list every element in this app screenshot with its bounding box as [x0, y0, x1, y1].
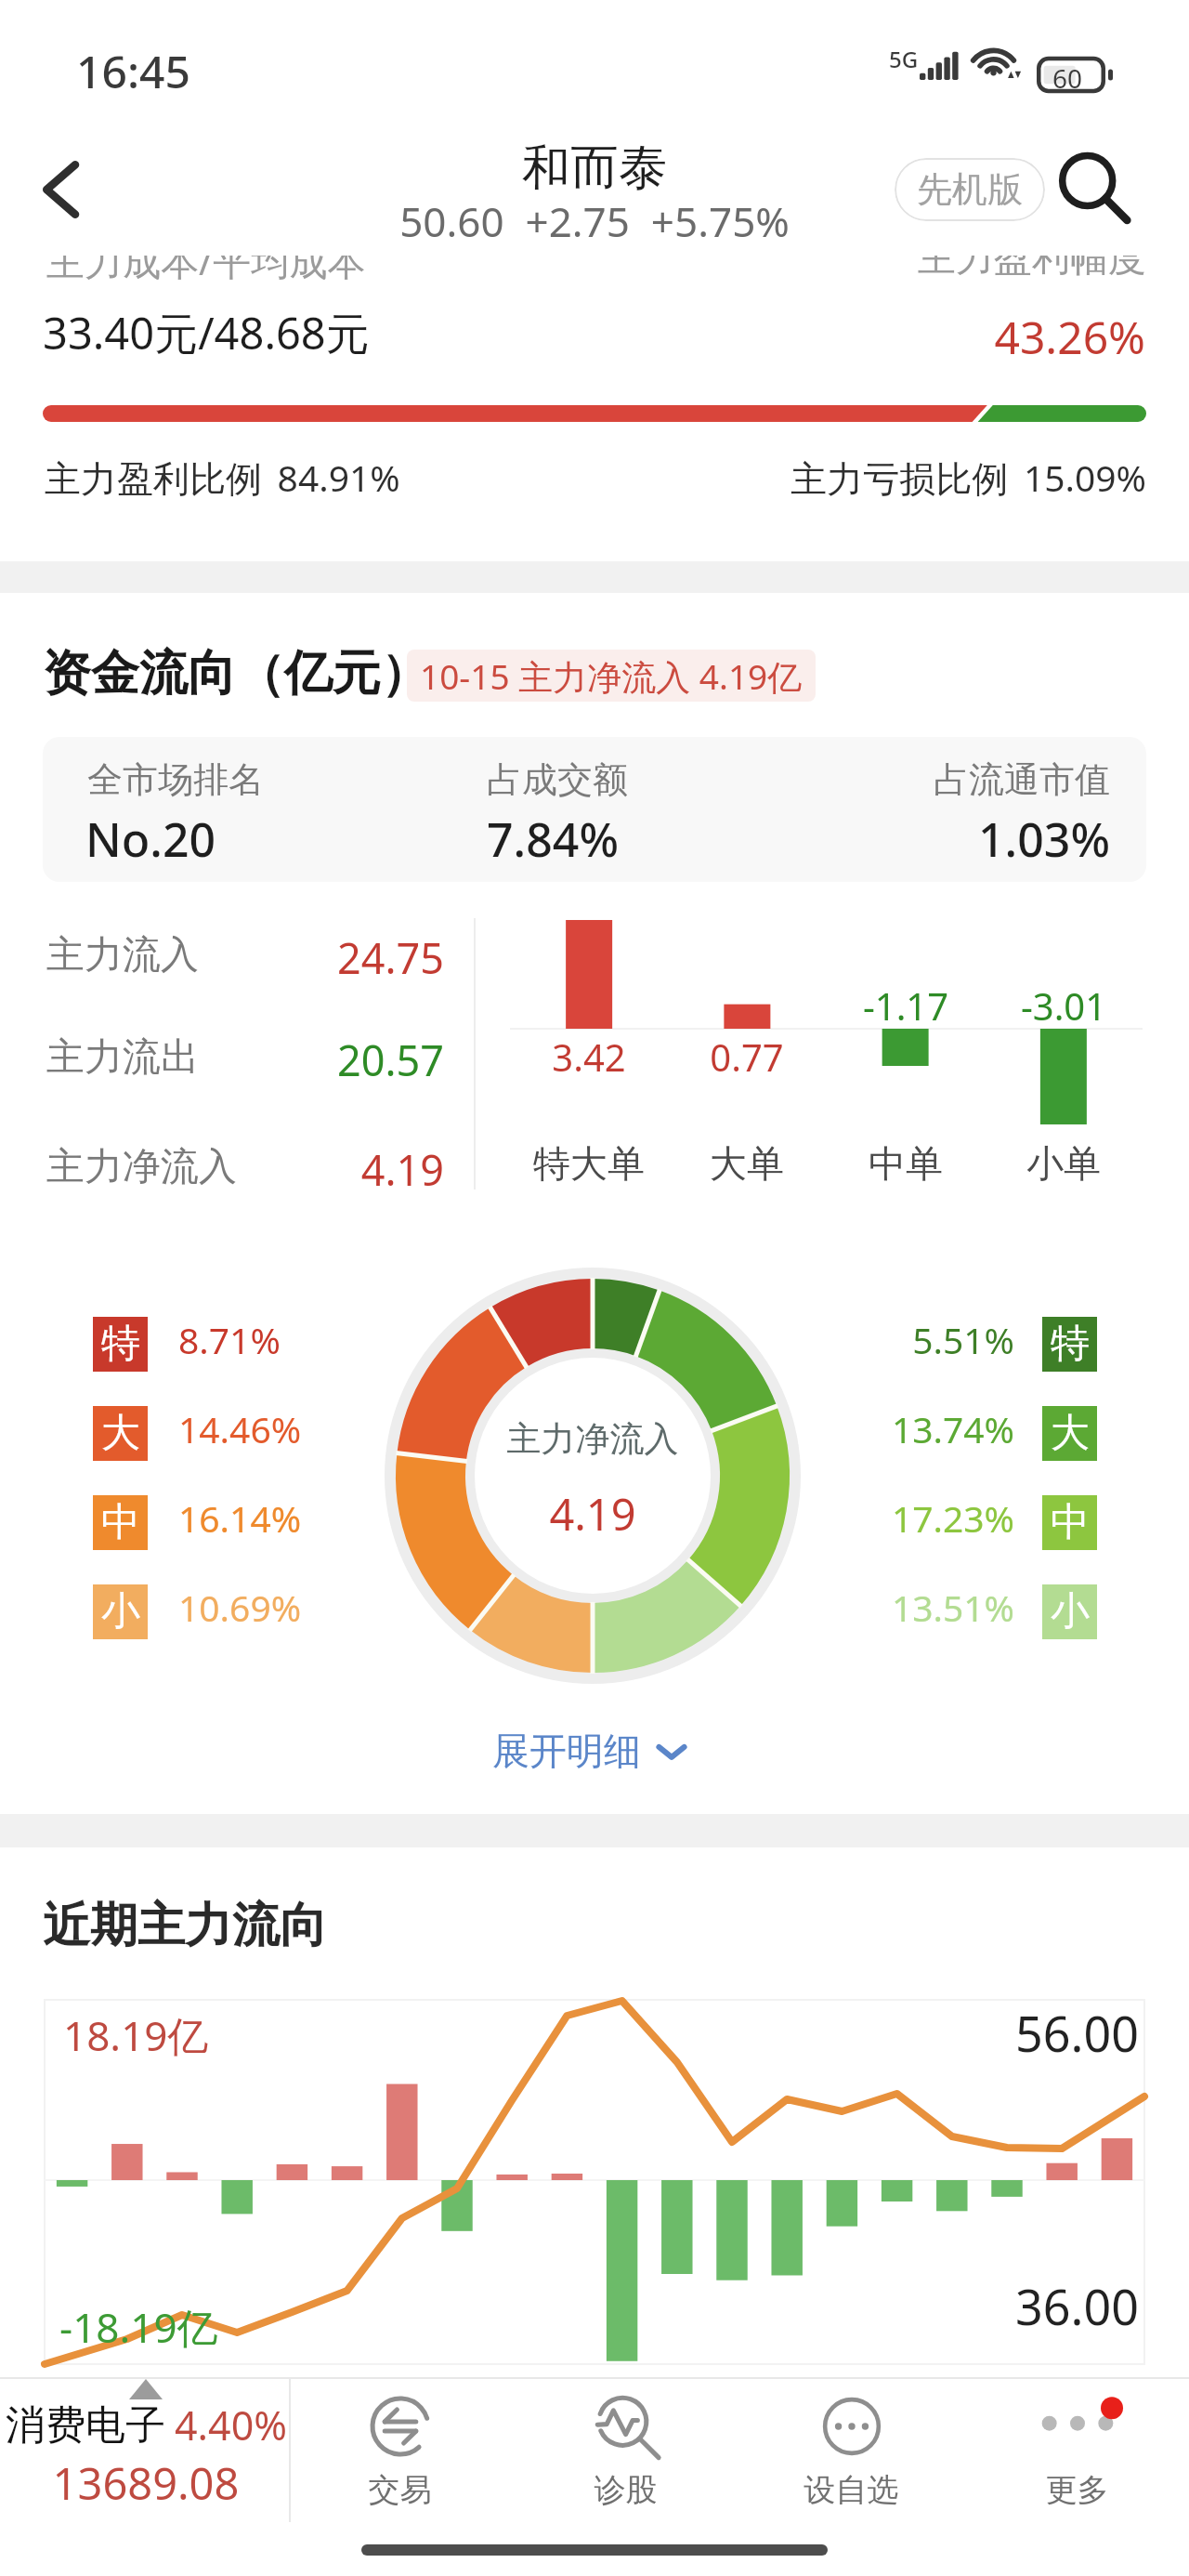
- staticText: 小单: [961, 1140, 1166, 1187]
- staticText: 60: [1029, 60, 1105, 95]
- staticText: 全市场排名: [87, 757, 264, 802]
- staticText: 13.51%: [743, 1583, 1014, 1632]
- staticText: 设自选: [739, 2470, 963, 2510]
- staticText: 33.40元/48.68元: [43, 303, 370, 362]
- staticText: 和而泰: [0, 138, 1189, 199]
- staticText: 16:45: [76, 41, 190, 101]
- button[interactable]: 展开明细: [492, 1721, 706, 1781]
- staticText: 消费电子: [6, 2400, 165, 2451]
- staticText: 交易: [288, 2470, 512, 2510]
- staticText: 中: [101, 1498, 140, 1547]
- staticText: 4.19: [0, 1141, 444, 1198]
- staticText: 18.19亿: [63, 2007, 209, 2063]
- staticText: 先机版: [917, 167, 1023, 212]
- staticText: No.20: [85, 808, 216, 871]
- staticText: 更多: [965, 2470, 1189, 2510]
- staticText: 10-15 主力净流入 4.19亿: [420, 652, 803, 700]
- staticText: 近期主力流向: [43, 1896, 327, 1955]
- button[interactable]: 消费电子 index: [0, 2377, 290, 2522]
- staticText: 中单: [804, 1140, 1008, 1187]
- staticText: 特: [101, 1320, 140, 1369]
- staticText: 小: [101, 1587, 140, 1636]
- staticText: 5.51%: [743, 1315, 1014, 1364]
- staticText: 13.74%: [743, 1404, 1014, 1453]
- staticText: 占流通市值: [43, 757, 1110, 802]
- staticText: 4.19: [407, 1484, 778, 1544]
- staticText: 17.23%: [743, 1493, 1014, 1543]
- staticText: 中: [1051, 1498, 1090, 1547]
- staticText: -1.17: [813, 980, 999, 1031]
- staticText: 4.40%: [175, 2398, 288, 2452]
- staticText: 0.77: [654, 1032, 840, 1082]
- staticText: 主力流入: [46, 931, 199, 979]
- staticText: 7.84%: [487, 808, 619, 871]
- staticText: 特大单: [487, 1140, 691, 1187]
- staticText: -18.19亿: [59, 2299, 218, 2355]
- staticText: 主力盈利比例 84.91%: [45, 453, 400, 502]
- staticText: 36.00: [45, 2273, 1139, 2339]
- staticText: 3.42: [496, 1032, 682, 1082]
- staticText: 诊股: [514, 2470, 738, 2510]
- button[interactable]: Search: [1057, 152, 1128, 223]
- staticText: 56.00: [45, 2000, 1139, 2066]
- staticText: 13689.08: [6, 2453, 286, 2513]
- button[interactable]: 诊股: [514, 2377, 738, 2522]
- staticText: 24.75: [0, 929, 444, 986]
- staticText: 小: [1051, 1587, 1090, 1636]
- button[interactable]: Back: [22, 147, 108, 232]
- staticText: 资金流向（亿元）: [43, 643, 429, 704]
- staticText: 大: [1051, 1409, 1090, 1458]
- staticText: 5G: [889, 44, 919, 74]
- staticText: 10.69%: [178, 1583, 302, 1632]
- staticText: 特: [1051, 1320, 1090, 1369]
- staticText: 20.57: [0, 1032, 444, 1088]
- staticText: 8.71%: [178, 1315, 281, 1364]
- button[interactable]: 设自选: [739, 2377, 963, 2522]
- staticText: 主力亏损比例 15.09%: [0, 453, 1146, 502]
- staticText: 主力净流入: [46, 1143, 237, 1191]
- staticText: 占成交额: [487, 757, 628, 802]
- staticText: 主力成本/平均成本: [46, 234, 366, 286]
- staticText: 16.14%: [178, 1493, 302, 1543]
- staticText: 大: [101, 1409, 140, 1458]
- button[interactable]: 交易: [288, 2377, 512, 2522]
- staticText: 43.26%: [0, 307, 1145, 367]
- staticText: 展开明细: [492, 1728, 641, 1774]
- staticText: 主力流出: [46, 1033, 199, 1082]
- staticText: 大单: [645, 1140, 849, 1187]
- staticText: 14.46%: [178, 1404, 302, 1453]
- staticText: 1.03%: [43, 808, 1110, 871]
- staticText: 主力盈利幅度: [0, 234, 1146, 283]
- button[interactable]: 先机版: [895, 158, 1045, 221]
- staticText: -3.01: [971, 980, 1156, 1031]
- staticText: 50.60 +2.75 +5.75%: [0, 193, 1189, 249]
- button[interactable]: 更多: [965, 2377, 1189, 2522]
- staticText: 主力净流入: [407, 1417, 778, 1461]
